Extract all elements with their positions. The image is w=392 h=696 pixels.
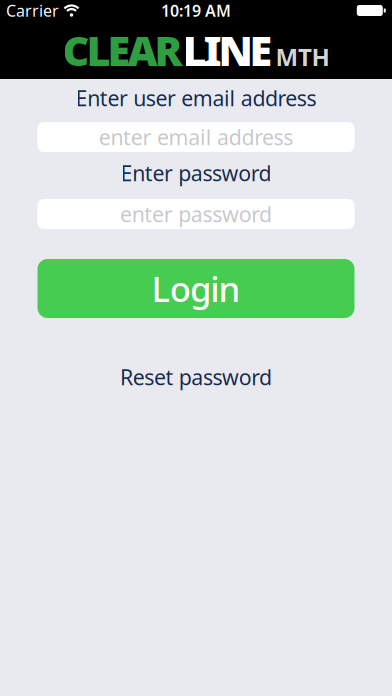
staticText: Reset password xyxy=(120,363,272,391)
staticText: 10:19 AM xyxy=(161,0,231,21)
staticText: enter email address xyxy=(99,123,293,151)
staticText: Enter password xyxy=(121,159,271,187)
staticText: Login xyxy=(152,265,240,311)
staticText: LINE xyxy=(182,23,272,77)
staticText: CLEAR xyxy=(62,23,182,77)
button[interactable]: Login xyxy=(37,259,354,318)
button[interactable]: enter password xyxy=(37,199,354,229)
staticText: Enter user email address xyxy=(76,84,316,112)
button[interactable]: Reset password xyxy=(120,366,272,388)
staticText: MTH xyxy=(275,41,329,73)
button[interactable]: enter email address xyxy=(37,122,354,152)
staticText: Carrier xyxy=(6,0,59,21)
staticText: enter password xyxy=(120,200,272,228)
